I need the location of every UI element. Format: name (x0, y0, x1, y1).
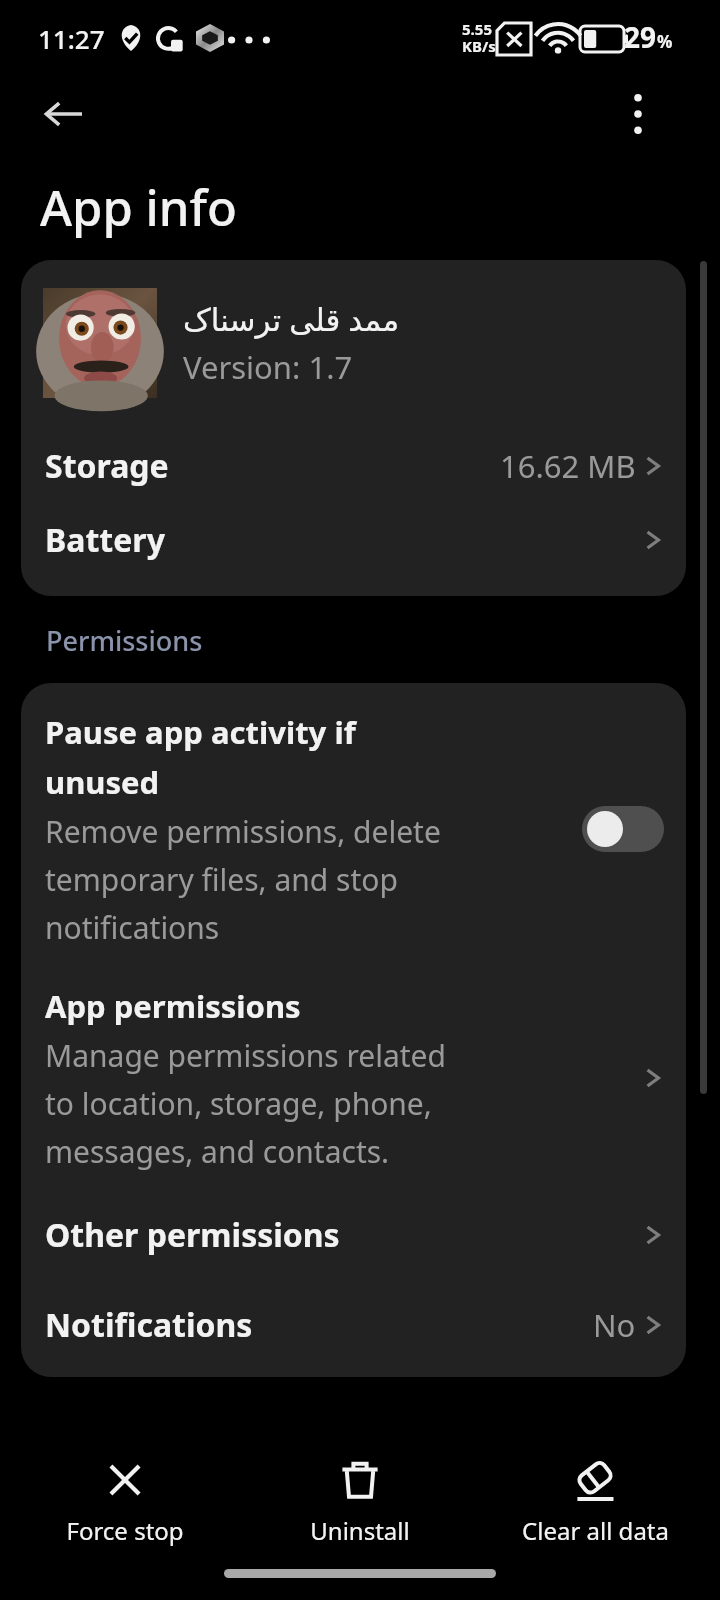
staticText: Force stop (66, 1514, 184, 1547)
button[interactable]: App permissions (21, 981, 686, 1181)
staticText: 16.62 MB (500, 445, 636, 487)
staticText: App permissions (45, 985, 301, 1027)
button[interactable]: ممد قلی ترسناک (21, 260, 686, 408)
staticText: ممد قلی ترسناک (183, 298, 400, 340)
staticText: Pause app activity if unused (45, 711, 356, 803)
button[interactable]: Notifications (21, 1303, 686, 1347)
button[interactable]: Back (28, 86, 100, 142)
staticText: Permissions (46, 622, 203, 659)
staticText: No (593, 1304, 636, 1346)
staticText: 29 (624, 18, 657, 56)
button[interactable]: Battery (21, 518, 686, 562)
staticText: Manage permissions related to location, … (45, 1035, 446, 1171)
button[interactable]: Clear all data (485, 1452, 705, 1553)
staticText: Other permissions (45, 1213, 640, 1257)
button[interactable]: Other permissions (21, 1213, 686, 1257)
staticText: Uninstall (310, 1514, 410, 1547)
staticText: Clear all data (522, 1514, 669, 1547)
staticText: Notifications (45, 1303, 593, 1347)
staticText: KB/s (462, 36, 496, 56)
staticText: App info (40, 174, 237, 241)
staticText: 11:27 (38, 21, 105, 56)
staticText: Remove permissions, delete temporary fil… (45, 811, 441, 947)
button[interactable]: More options (600, 86, 676, 142)
staticText: Battery (45, 518, 640, 562)
button[interactable]: Storage (21, 444, 686, 488)
staticText: % (657, 30, 673, 53)
button[interactable]: Pause app activity toggle (582, 806, 664, 852)
staticText: Storage (45, 444, 500, 488)
staticText: Version: 1.7 (183, 346, 353, 388)
button[interactable]: Uninstall (250, 1452, 470, 1553)
button[interactable]: Force stop (15, 1452, 235, 1553)
staticText: 5.55 (462, 19, 492, 39)
button[interactable]: Pause app activity if unused (21, 683, 686, 965)
